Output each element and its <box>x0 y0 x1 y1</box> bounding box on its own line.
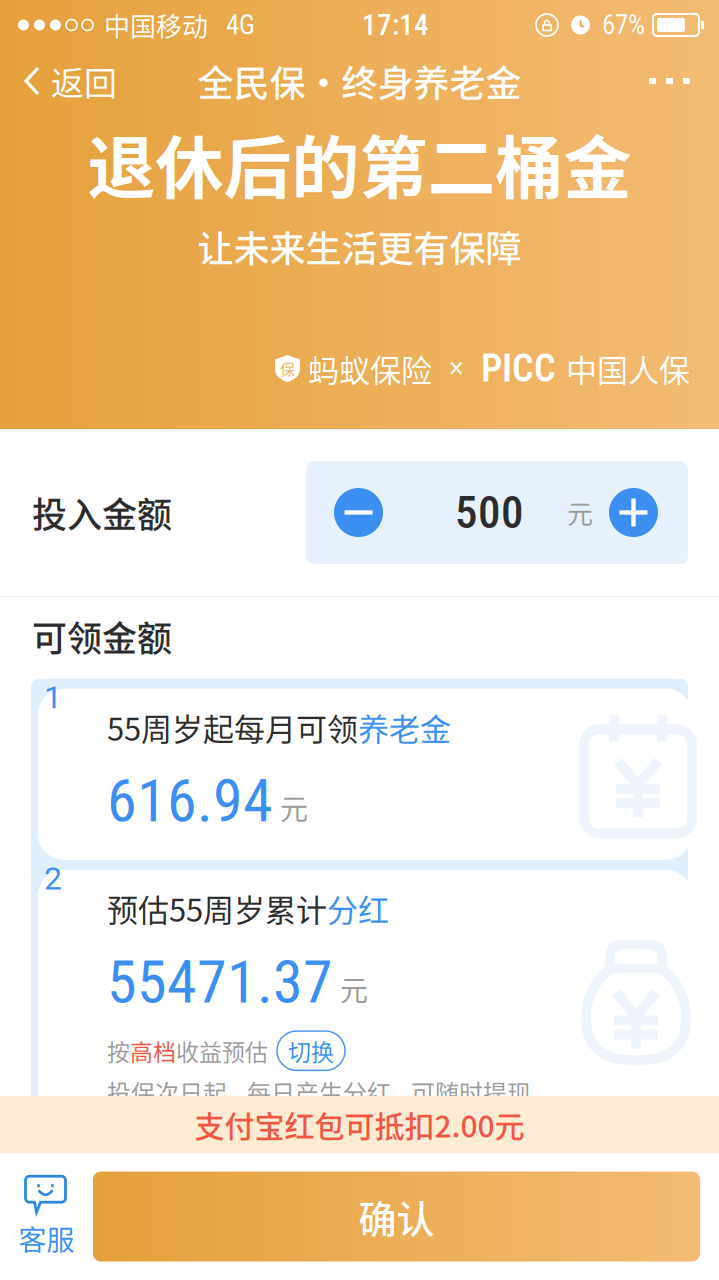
staticText: 17:14 <box>362 8 429 42</box>
button[interactable]: More options <box>623 50 719 112</box>
staticText: PICC <box>481 346 556 391</box>
staticText: 高档 <box>130 1034 176 1067</box>
staticText: 中国人保 <box>566 346 690 391</box>
staticText: 投保次日起 每日产生分红 可随时提现 <box>107 1074 531 1109</box>
staticText: 退休后的第二桶金 <box>87 114 631 212</box>
staticText: 55周岁起每月可领 <box>107 705 358 750</box>
staticText: 中国移动 <box>104 6 208 44</box>
staticText: 收益预估 <box>176 1034 268 1067</box>
staticText: 养老金 <box>358 705 451 750</box>
staticText: 元 <box>340 968 368 1009</box>
staticText: 客服 <box>18 1218 74 1259</box>
staticText: 确认 <box>358 1189 434 1244</box>
staticText: 让未来生活更有保障 <box>197 220 521 273</box>
staticText: 1 <box>44 679 62 716</box>
staticText: 4G <box>226 9 255 41</box>
staticText: 返回 <box>51 57 117 105</box>
button[interactable]: 切换 <box>277 1031 345 1070</box>
staticText: 616.94 <box>107 766 273 836</box>
staticText: 可领金额 <box>32 611 172 662</box>
staticText: 2 <box>44 860 62 897</box>
button[interactable]: 客服 <box>0 1153 93 1280</box>
staticText: 按 <box>107 1034 130 1067</box>
button[interactable]: Increase amount <box>609 461 688 564</box>
staticText: 67% <box>602 9 645 41</box>
button[interactable]: Decrease amount <box>306 461 383 564</box>
staticText: 切换 <box>288 1034 334 1067</box>
staticText: 保 <box>280 358 295 379</box>
staticText: ✕ <box>448 356 465 381</box>
staticText: 55471.37 <box>107 947 333 1017</box>
staticText: 全民保·终身养老金 <box>197 55 521 107</box>
staticText: 分红 <box>327 886 389 931</box>
staticText: 元 <box>567 494 593 531</box>
staticText: 投入金额 <box>32 487 172 538</box>
staticText: 预估55周岁累计 <box>107 886 327 931</box>
button[interactable]: 确认 <box>93 1171 700 1261</box>
button[interactable]: 返回 <box>0 50 131 112</box>
staticText: 500 <box>455 486 524 539</box>
staticText: 支付宝红包可抵扣2.00元 <box>194 1103 524 1146</box>
staticText: 蚂蚁保险 <box>308 346 432 391</box>
staticText: 元 <box>280 787 308 828</box>
